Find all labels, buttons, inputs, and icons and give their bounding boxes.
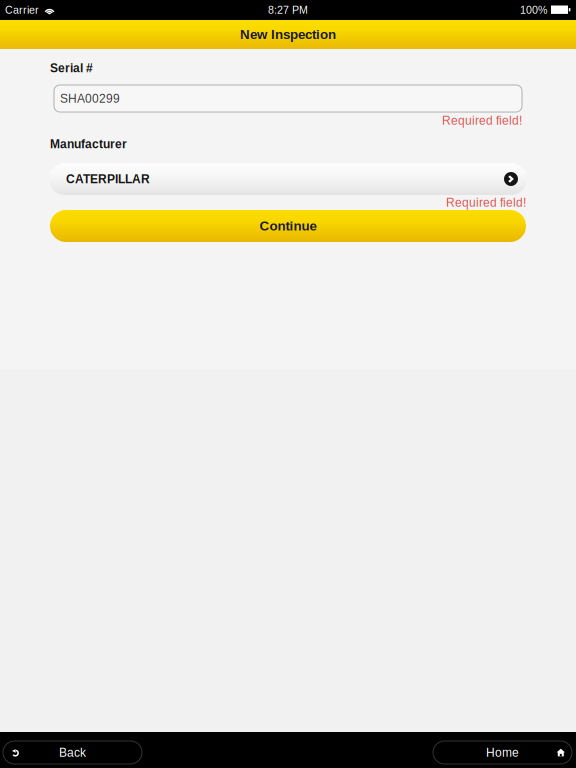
staticText: Manufacturer bbox=[50, 137, 127, 151]
staticText: Continue bbox=[259, 219, 316, 233]
button[interactable]: Home bbox=[433, 741, 572, 764]
staticText: 100% bbox=[520, 4, 547, 16]
staticText: Back bbox=[59, 746, 86, 759]
staticText: Required field! bbox=[442, 114, 522, 127]
staticText: Carrier bbox=[5, 4, 39, 16]
staticText: Home bbox=[486, 746, 519, 759]
staticText: CATERPILLAR bbox=[66, 172, 150, 186]
staticText: New Inspection bbox=[240, 27, 336, 42]
staticText: Serial # bbox=[50, 61, 93, 75]
staticText: SHA00299 bbox=[60, 92, 120, 105]
staticText: 8:27 PM bbox=[268, 4, 308, 16]
button[interactable]: Continue bbox=[50, 210, 526, 242]
button[interactable]: CATERPILLAR bbox=[49, 163, 527, 195]
button[interactable]: Back bbox=[3, 741, 142, 764]
staticText: Required field! bbox=[446, 196, 526, 209]
